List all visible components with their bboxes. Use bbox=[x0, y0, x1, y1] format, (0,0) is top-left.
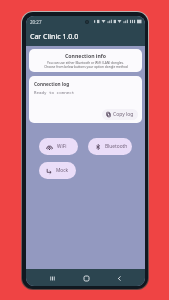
staticText: Car Clinic 1.0.0 bbox=[30, 32, 79, 42]
staticText: Bluetooth bbox=[105, 143, 128, 150]
staticText: Connection log bbox=[34, 81, 70, 87]
button[interactable]: Home bbox=[78, 270, 94, 286]
button[interactable]: WiFi bbox=[39, 138, 78, 155]
button[interactable]: Mock bbox=[39, 162, 76, 179]
button[interactable]: Bluetooth bbox=[88, 138, 132, 155]
button[interactable]: Recents bbox=[44, 270, 60, 286]
button[interactable]: Copy log bbox=[102, 109, 138, 120]
staticText: Copy log bbox=[113, 111, 134, 118]
staticText: Choose from below buttons your option do… bbox=[44, 65, 128, 69]
button[interactable]: Back bbox=[111, 270, 127, 286]
staticText: WiFi bbox=[57, 143, 67, 150]
staticText: Ready to connect bbox=[34, 90, 75, 96]
staticText: You can use either Bluetooth or WiFi (LA… bbox=[47, 61, 124, 65]
staticText: Connection info bbox=[65, 52, 107, 59]
staticText: Mock bbox=[56, 167, 69, 174]
staticText: 20:27 bbox=[30, 19, 42, 25]
